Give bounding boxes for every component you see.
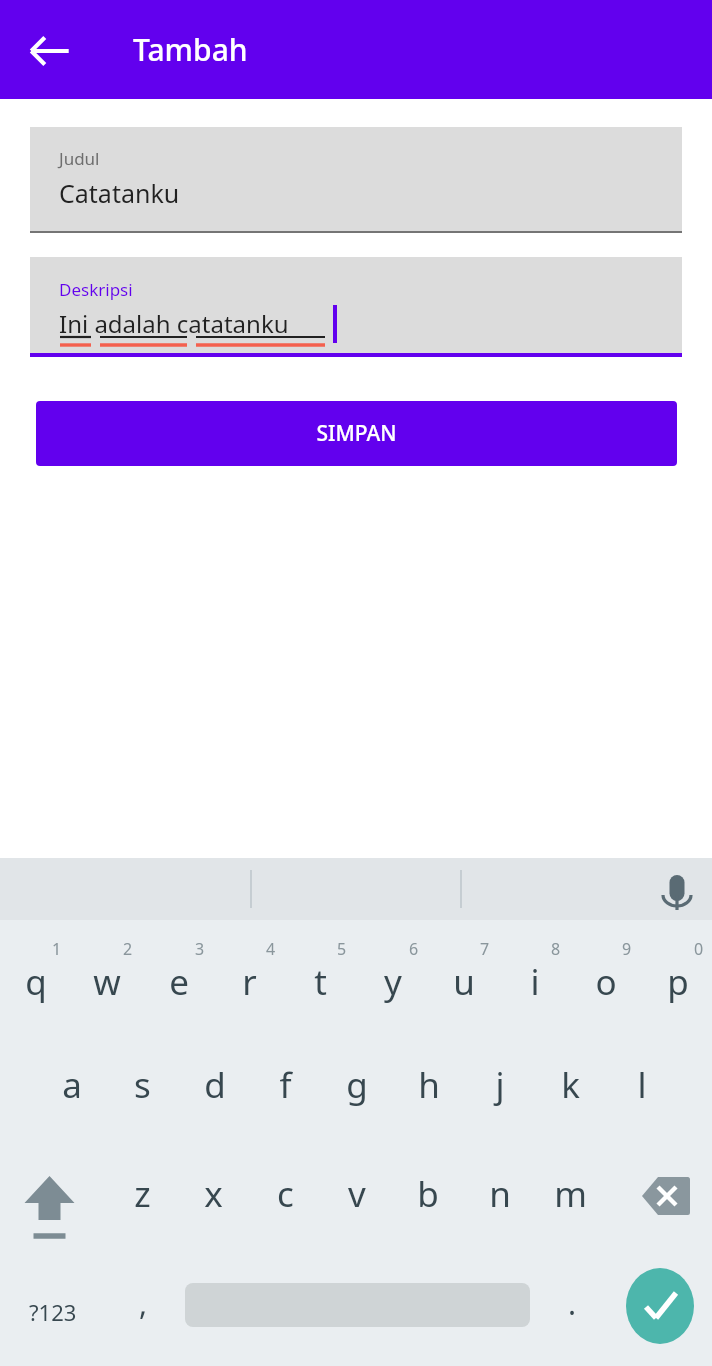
button[interactable]: 4 [214, 930, 285, 1039]
staticText: . [568, 1283, 577, 1324]
button[interactable]: z [107, 1148, 178, 1257]
staticText: b [417, 1170, 439, 1218]
staticText: i [530, 958, 540, 1006]
staticText: Catatanku [59, 176, 180, 210]
staticText: m [554, 1170, 587, 1218]
staticText: 5 [337, 938, 347, 960]
button[interactable]: 0 [642, 930, 712, 1039]
button[interactable]: 7 [428, 930, 499, 1039]
button[interactable]: f [250, 1039, 321, 1148]
staticText: f [279, 1061, 292, 1109]
staticText: z [134, 1170, 151, 1218]
button[interactable]: x [178, 1148, 249, 1257]
button[interactable]: 9 [570, 930, 641, 1039]
staticText: d [204, 1061, 226, 1109]
staticText: ?123 [29, 1297, 77, 1327]
staticText: Judul [59, 147, 100, 170]
staticText: c [277, 1170, 294, 1218]
staticText: Tambah [133, 29, 248, 70]
staticText: o [595, 958, 617, 1006]
staticText: a [62, 1061, 82, 1109]
staticText: h [418, 1061, 440, 1109]
button[interactable]: Shift [7, 1148, 92, 1257]
staticText: j [495, 1061, 505, 1109]
button[interactable]: Deskripsi [30, 257, 682, 353]
button[interactable]: n [464, 1148, 535, 1257]
staticText: t [314, 958, 327, 1006]
staticText: 1 [52, 938, 62, 960]
button[interactable]: Backspace [620, 1148, 708, 1257]
staticText: u [453, 958, 475, 1006]
staticText: p [667, 958, 689, 1006]
button[interactable]: l [606, 1039, 677, 1148]
staticText: l [637, 1061, 647, 1109]
staticText: n [489, 1170, 511, 1218]
staticText: Ini adalah catatanku [59, 307, 289, 340]
button[interactable]: d [179, 1039, 250, 1148]
staticText: 4 [266, 938, 276, 960]
staticText: s [134, 1061, 151, 1109]
staticText: y [384, 958, 402, 1006]
button[interactable]: m [535, 1148, 606, 1257]
button[interactable]: g [321, 1039, 392, 1148]
button[interactable]: v [321, 1148, 392, 1257]
staticText: 0 [694, 938, 704, 960]
button[interactable]: 8 [499, 930, 570, 1039]
button[interactable]: , [110, 1257, 176, 1366]
staticText: 3 [195, 938, 205, 960]
staticText: r [242, 958, 257, 1006]
button[interactable]: 5 [285, 930, 356, 1039]
button[interactable]: j [464, 1039, 535, 1148]
button[interactable]: h [393, 1039, 464, 1148]
button[interactable]: 6 [357, 930, 428, 1039]
staticText: 2 [123, 938, 133, 960]
staticText: , [139, 1283, 148, 1324]
button[interactable]: 1 [0, 930, 71, 1039]
button[interactable]: c [250, 1148, 321, 1257]
staticText: 9 [622, 938, 632, 960]
staticText: w [93, 958, 121, 1006]
staticText: Deskripsi [59, 278, 133, 301]
button[interactable]: SIMPAN [36, 401, 677, 466]
button[interactable]: k [535, 1039, 606, 1148]
button[interactable]: Back [24, 25, 76, 77]
staticText: g [346, 1061, 368, 1109]
button[interactable]: ?123 [10, 1257, 96, 1366]
staticText: k [561, 1061, 580, 1109]
button[interactable]: . [540, 1257, 604, 1366]
button[interactable]: Enter [620, 1257, 700, 1357]
button[interactable]: 2 [71, 930, 142, 1039]
button[interactable]: a [36, 1039, 107, 1148]
staticText: q [25, 958, 47, 1006]
staticText: x [204, 1170, 223, 1218]
staticText: v [348, 1170, 366, 1218]
staticText: 7 [480, 938, 490, 960]
button[interactable]: Judul [30, 127, 682, 232]
staticText: 8 [551, 938, 561, 960]
button[interactable]: 3 [143, 930, 214, 1039]
staticText: SIMPAN [316, 419, 397, 448]
button[interactable]: b [392, 1148, 463, 1257]
staticText: e [169, 958, 189, 1006]
button[interactable]: s [107, 1039, 178, 1148]
staticText: 6 [409, 938, 419, 960]
button[interactable]: Voice input [651, 864, 703, 916]
